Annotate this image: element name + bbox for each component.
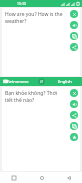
button[interactable]: Back [55, 172, 82, 183]
button[interactable]: Vietnamese [0, 77, 35, 86]
button[interactable]: Swap languages [35, 77, 47, 86]
button[interactable]: Home [28, 172, 55, 183]
button[interactable]: Favorite [70, 133, 78, 141]
button[interactable]: Recents [0, 172, 28, 183]
button[interactable]: Share [70, 43, 78, 51]
staticText: English [58, 79, 72, 84]
button[interactable]: English [47, 77, 82, 86]
staticText: Vietnamese [6, 79, 29, 84]
button[interactable]: Keyboard [2, 78, 9, 85]
staticText: How are you? How is the weather? [5, 11, 63, 25]
button[interactable]: Copy [70, 122, 78, 130]
button[interactable]: Speak [70, 100, 78, 108]
button[interactable]: Close [70, 10, 78, 18]
staticText: Bạn khỏe không? Thời tiết thế nào? [5, 90, 63, 104]
button[interactable]: Close [70, 89, 78, 97]
staticText: 10:30 [17, 1, 26, 6]
button[interactable]: Copy [70, 32, 78, 40]
button[interactable]: Share [70, 111, 78, 119]
button[interactable]: Speak [70, 21, 78, 29]
